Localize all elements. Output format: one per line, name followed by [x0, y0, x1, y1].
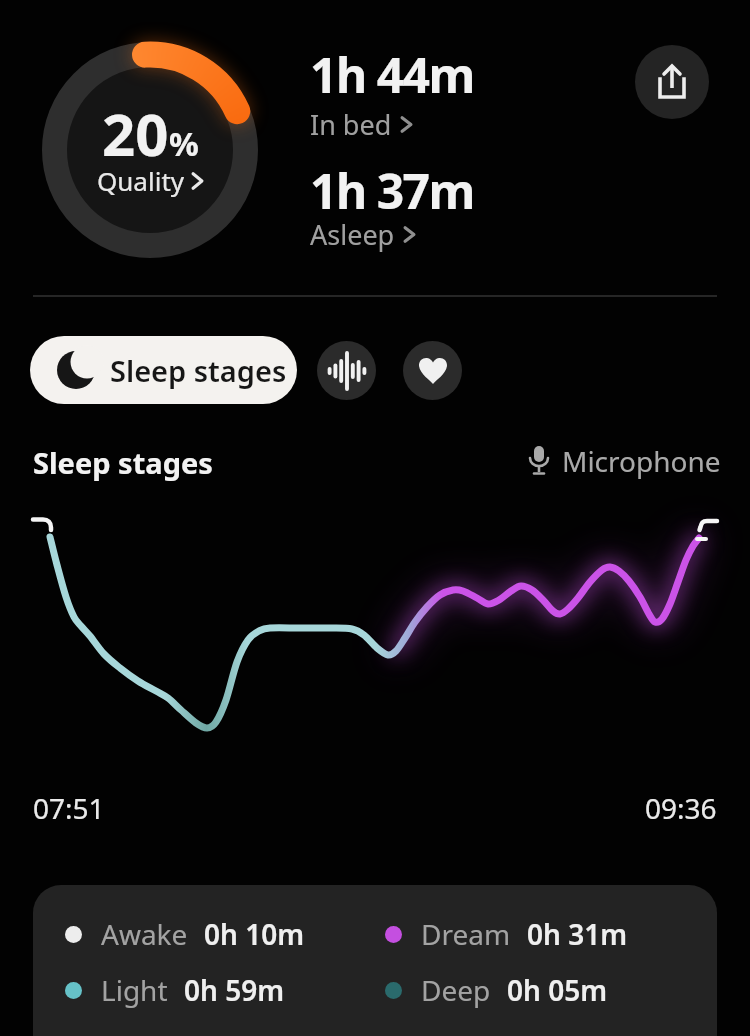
staticText: Deep [421, 971, 491, 1009]
staticText: Sleep stages [33, 443, 213, 482]
staticText: Sleep stages [110, 351, 287, 390]
staticText: 1h 37m [310, 158, 474, 223]
button[interactable]: Awake [65, 915, 305, 953]
staticText: 1h 44m [310, 42, 474, 107]
button[interactable]: Quality [97, 163, 203, 198]
button[interactable] [317, 341, 376, 400]
staticText: 09:36 [645, 789, 717, 827]
button[interactable]: Light [65, 971, 285, 1009]
button[interactable]: Asleep [310, 216, 415, 253]
button[interactable]: Dream [385, 915, 628, 953]
staticText: % [169, 121, 199, 166]
button[interactable]: Sleep stages [30, 336, 297, 404]
staticText: Asleep [310, 216, 395, 253]
staticText: 0h 10m [204, 915, 305, 953]
staticText: 0h 31m [527, 915, 628, 953]
button[interactable] [635, 45, 709, 119]
staticText: Dream [421, 915, 511, 953]
staticText: Light [101, 971, 168, 1009]
staticText: Microphone [562, 442, 721, 480]
button[interactable]: Microphone [528, 442, 721, 480]
staticText: 0h 59m [184, 971, 285, 1009]
staticText: Quality [97, 163, 185, 198]
staticText: 20 [102, 94, 169, 173]
staticText: 07:51 [33, 789, 105, 827]
staticText: Awake [101, 915, 188, 953]
button[interactable] [403, 341, 462, 400]
staticText: 0h 05m [507, 971, 608, 1009]
button[interactable]: In bed [310, 106, 412, 143]
button[interactable]: Deep [385, 971, 608, 1009]
staticText: In bed [310, 106, 392, 143]
